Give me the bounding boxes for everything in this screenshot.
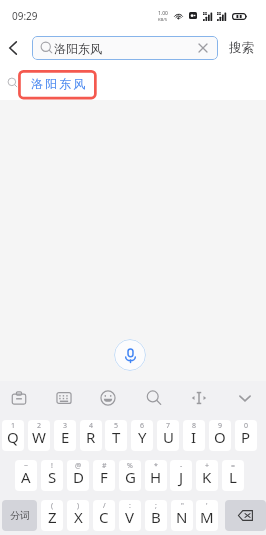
button[interactable]: Backspace bbox=[225, 500, 266, 531]
button[interactable]: % bbox=[119, 460, 141, 491]
staticText: + bbox=[205, 461, 210, 471]
button[interactable]: Clipboard bbox=[4, 383, 34, 413]
staticText: KB/S bbox=[158, 17, 168, 23]
button[interactable]: ) bbox=[67, 500, 89, 531]
staticText: N bbox=[176, 507, 188, 527]
button[interactable]: 0 bbox=[235, 420, 257, 451]
staticText: U bbox=[163, 427, 174, 447]
staticText: Q bbox=[7, 427, 19, 447]
button[interactable]: 3 bbox=[54, 420, 76, 451]
staticText: 09:29 bbox=[12, 9, 38, 23]
button[interactable]: 分词 bbox=[2, 500, 37, 531]
staticText: = bbox=[231, 461, 236, 471]
staticText: 3 bbox=[63, 421, 68, 431]
staticText: 6 bbox=[140, 421, 145, 431]
staticText: V bbox=[125, 507, 135, 527]
button[interactable]: " bbox=[171, 500, 193, 531]
button[interactable]: Emoji bbox=[93, 383, 123, 413]
staticText: H bbox=[150, 467, 162, 487]
button[interactable]: @ bbox=[67, 460, 89, 491]
button[interactable]: Hide keyboard bbox=[230, 383, 260, 413]
button[interactable]: 6 bbox=[131, 420, 153, 451]
button[interactable]: ; bbox=[145, 500, 167, 531]
staticText: F bbox=[100, 467, 108, 487]
staticText: % bbox=[127, 461, 133, 471]
staticText: 7 bbox=[166, 421, 171, 431]
button[interactable]: 搜索 bbox=[220, 34, 262, 62]
staticText: 1 bbox=[11, 421, 16, 431]
staticText: 9 bbox=[218, 421, 223, 431]
staticText: - bbox=[180, 461, 183, 471]
button[interactable]: Search bbox=[139, 383, 169, 413]
staticText: S bbox=[48, 467, 57, 487]
button[interactable]: Move cursor bbox=[184, 383, 214, 413]
button[interactable]: Number pad bbox=[49, 383, 79, 413]
staticText: 8 bbox=[192, 421, 197, 431]
button[interactable]: ( bbox=[41, 500, 63, 531]
button[interactable]: 7 bbox=[157, 420, 179, 451]
staticText: J bbox=[179, 467, 184, 487]
button[interactable]: 4 bbox=[80, 420, 102, 451]
button[interactable]: / bbox=[93, 500, 115, 531]
staticText: / bbox=[103, 501, 106, 511]
button[interactable]: - bbox=[170, 460, 192, 491]
staticText: ) bbox=[77, 501, 80, 511]
staticText: A bbox=[21, 467, 31, 487]
staticText: D bbox=[73, 467, 84, 487]
staticText: Y bbox=[138, 427, 147, 447]
button[interactable]: + bbox=[196, 460, 218, 491]
staticText: L bbox=[229, 467, 237, 487]
button[interactable]: 2 bbox=[28, 420, 50, 451]
staticText: B bbox=[151, 507, 161, 527]
staticText: 1.00 bbox=[158, 10, 168, 17]
staticText: " bbox=[181, 501, 184, 511]
button[interactable]: Clear bbox=[193, 38, 213, 58]
staticText: C bbox=[99, 507, 109, 527]
staticText: 洛阳东风 bbox=[31, 76, 88, 91]
button[interactable]: 1 bbox=[2, 420, 24, 451]
staticText: ( bbox=[51, 501, 54, 511]
button[interactable]: ! bbox=[41, 460, 63, 491]
staticText: E bbox=[61, 427, 70, 447]
staticText: O bbox=[214, 427, 226, 447]
staticText: 洛阳东风 bbox=[54, 41, 102, 56]
button[interactable]: ~ bbox=[15, 460, 37, 491]
staticText: * bbox=[154, 461, 158, 471]
staticText: ~ bbox=[24, 461, 29, 471]
button[interactable]: 9 bbox=[209, 420, 231, 451]
button[interactable]: = bbox=[222, 460, 244, 491]
staticText: 搜索 bbox=[229, 40, 254, 56]
staticText: 5 bbox=[114, 421, 119, 431]
staticText: ' bbox=[206, 501, 208, 511]
button[interactable]: 洛阳东风 bbox=[0, 64, 266, 100]
staticText: # bbox=[102, 461, 107, 471]
staticText: @ bbox=[75, 461, 82, 471]
button[interactable]: Back bbox=[0, 34, 26, 62]
staticText: T bbox=[112, 427, 121, 447]
button[interactable]: : bbox=[119, 500, 141, 531]
staticText: 2 bbox=[37, 421, 42, 431]
staticText: 分词 bbox=[10, 509, 30, 522]
button[interactable]: ' bbox=[196, 500, 218, 531]
button[interactable]: 8 bbox=[183, 420, 205, 451]
staticText: I bbox=[191, 427, 197, 447]
staticText: R bbox=[86, 427, 96, 447]
staticText: 0 bbox=[244, 421, 249, 431]
button[interactable]: 5 bbox=[105, 420, 127, 451]
button[interactable]: * bbox=[145, 460, 167, 491]
staticText: W bbox=[32, 427, 46, 447]
staticText: M bbox=[200, 507, 214, 527]
staticText: ; bbox=[155, 501, 157, 511]
staticText: 4 bbox=[89, 421, 94, 431]
staticText: K bbox=[202, 467, 212, 487]
staticText: Z bbox=[48, 507, 57, 527]
staticText: P bbox=[241, 427, 251, 447]
button[interactable]: 洛阳东风 bbox=[32, 36, 218, 60]
button[interactable]: Voice input bbox=[114, 339, 146, 371]
staticText: ! bbox=[51, 461, 53, 471]
button[interactable]: # bbox=[93, 460, 115, 491]
staticText: : bbox=[129, 501, 131, 511]
staticText: G bbox=[125, 467, 136, 487]
staticText: X bbox=[74, 507, 83, 527]
